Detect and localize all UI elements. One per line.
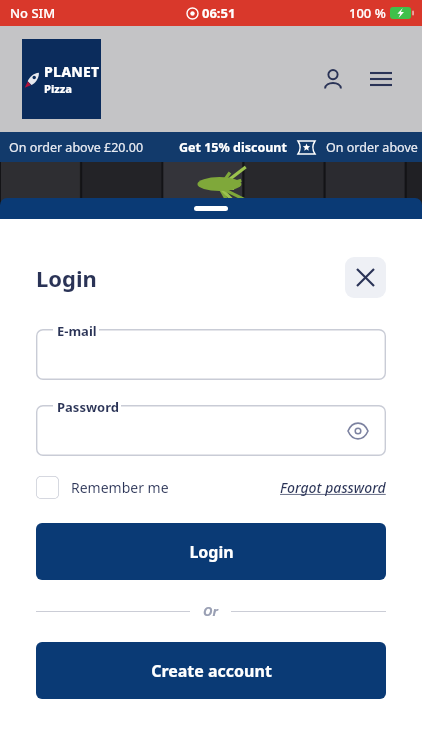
button[interactable]: Remember me: [36, 476, 169, 499]
staticText: On order above £20.00: [326, 139, 422, 156]
button[interactable]: Planet Pizza home: [22, 39, 101, 119]
staticText: Login: [189, 541, 234, 563]
button[interactable]: Password: [36, 405, 386, 456]
staticText: 06:51: [202, 4, 236, 22]
button[interactable]: Login: [36, 523, 386, 580]
button[interactable]: E-mail: [36, 329, 386, 380]
button[interactable]: Show password: [344, 417, 372, 445]
staticText: Pizza: [44, 81, 72, 96]
button[interactable]: Forgot password: [280, 478, 386, 497]
staticText: Get 15% discount: [179, 139, 287, 156]
button[interactable]: Create account: [36, 642, 386, 699]
staticText: No SIM: [10, 4, 56, 22]
button[interactable]: Close: [345, 257, 386, 298]
staticText: PLANET: [44, 62, 100, 81]
staticText: Forgot password: [280, 478, 386, 497]
staticText: Or: [203, 602, 218, 620]
staticText: 100 %: [349, 4, 386, 22]
staticText: Password: [57, 398, 119, 416]
staticText: Create account: [151, 660, 272, 682]
staticText: Login: [36, 263, 97, 293]
staticText: Remember me: [71, 478, 169, 497]
staticText: E-mail: [57, 322, 97, 340]
button[interactable]: Account: [314, 60, 352, 98]
staticText: On order above £20.00: [9, 139, 144, 156]
button[interactable]: Menu: [362, 60, 400, 98]
